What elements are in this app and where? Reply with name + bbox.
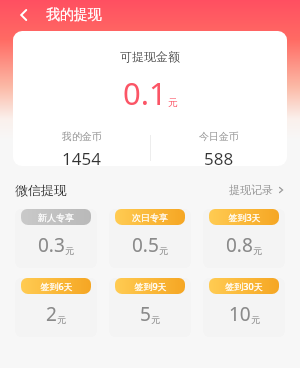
staticText: 今日金币 [199, 130, 239, 143]
staticText: 元 [65, 245, 74, 256]
staticText: 可提现金额 [120, 49, 180, 64]
staticText: 签到9天 [134, 280, 167, 292]
staticText: 0.1 [123, 72, 167, 114]
staticText: 1454 [62, 147, 101, 166]
button[interactable]: 签到6天 [15, 278, 97, 337]
staticText: 10 [229, 301, 251, 327]
button[interactable]: 签到30天 [203, 278, 285, 337]
staticText: 元 [253, 245, 262, 256]
button[interactable]: 新人专享 [15, 209, 97, 268]
staticText: 元 [251, 314, 260, 325]
button[interactable]: 签到9天 [109, 278, 191, 337]
staticText: 我的提现 [46, 6, 102, 24]
staticText: 0.8 [226, 232, 253, 258]
staticText: 次日专享 [132, 212, 168, 223]
staticText: 588 [204, 147, 234, 166]
button[interactable]: 签到3天 [203, 209, 285, 268]
staticText: 5 [140, 301, 151, 327]
staticText: 微信提现 [15, 182, 67, 198]
staticText: 元 [168, 96, 178, 109]
staticText: 新人专享 [38, 212, 74, 223]
button[interactable]: Back [12, 3, 36, 27]
staticText: 0.3 [38, 232, 65, 258]
staticText: 元 [151, 314, 160, 325]
staticText: 签到6天 [40, 280, 73, 292]
staticText: 签到3天 [228, 211, 261, 223]
staticText: 0.5 [132, 232, 159, 258]
staticText: 我的金币 [62, 130, 102, 143]
staticText: 元 [57, 314, 66, 325]
staticText: 2 [46, 301, 57, 327]
button[interactable]: 次日专享 [109, 209, 191, 268]
staticText: 元 [159, 245, 168, 256]
button[interactable]: 提现记录 [229, 183, 285, 197]
staticText: 签到30天 [225, 280, 263, 292]
staticText: 提现记录 [229, 183, 273, 197]
